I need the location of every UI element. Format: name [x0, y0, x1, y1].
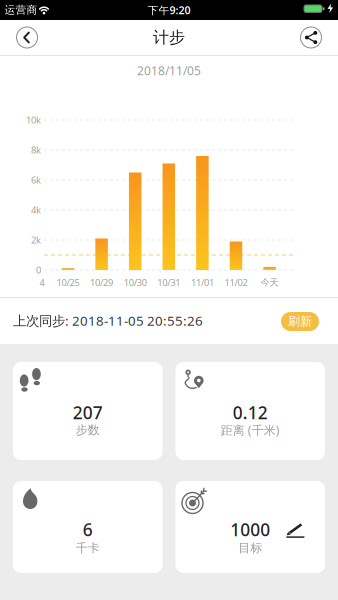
staticText: 10/31: [157, 276, 180, 289]
button[interactable]: [298, 24, 324, 50]
staticText: 6k: [31, 174, 41, 186]
staticText: 10/25: [56, 276, 79, 289]
staticText: 目标: [238, 541, 262, 555]
staticText: 8k: [31, 144, 41, 156]
staticText: 2k: [31, 234, 41, 246]
staticText: 下午9:20: [147, 3, 190, 17]
staticText: 207: [73, 401, 103, 424]
staticText: 4k: [31, 204, 41, 216]
staticText: 0.12: [233, 401, 268, 424]
staticText: 今天: [261, 277, 279, 288]
staticText: 1000: [230, 518, 270, 541]
button[interactable]: [14, 24, 40, 50]
staticText: 距离 (千米): [221, 422, 280, 438]
button[interactable]: [284, 522, 306, 539]
staticText: 6: [83, 518, 93, 541]
staticText: 10k: [26, 114, 41, 126]
staticText: 千卡: [76, 541, 100, 555]
staticText: 0: [36, 264, 41, 276]
button[interactable]: 刷新: [281, 312, 319, 331]
staticText: 10/29: [90, 276, 113, 289]
staticText: 运营商: [4, 3, 37, 16]
staticText: 11/02: [224, 276, 247, 289]
staticText: 2018/11/05: [137, 62, 201, 78]
staticText: 10/30: [124, 276, 147, 289]
staticText: 上次同步: 2018-11-05 20:55:26: [13, 312, 203, 329]
staticText: 11/01: [191, 276, 214, 289]
staticText: 计步: [153, 28, 185, 47]
staticText: 4: [39, 276, 44, 289]
staticText: 步数: [76, 423, 100, 437]
staticText: 刷新: [288, 314, 312, 329]
